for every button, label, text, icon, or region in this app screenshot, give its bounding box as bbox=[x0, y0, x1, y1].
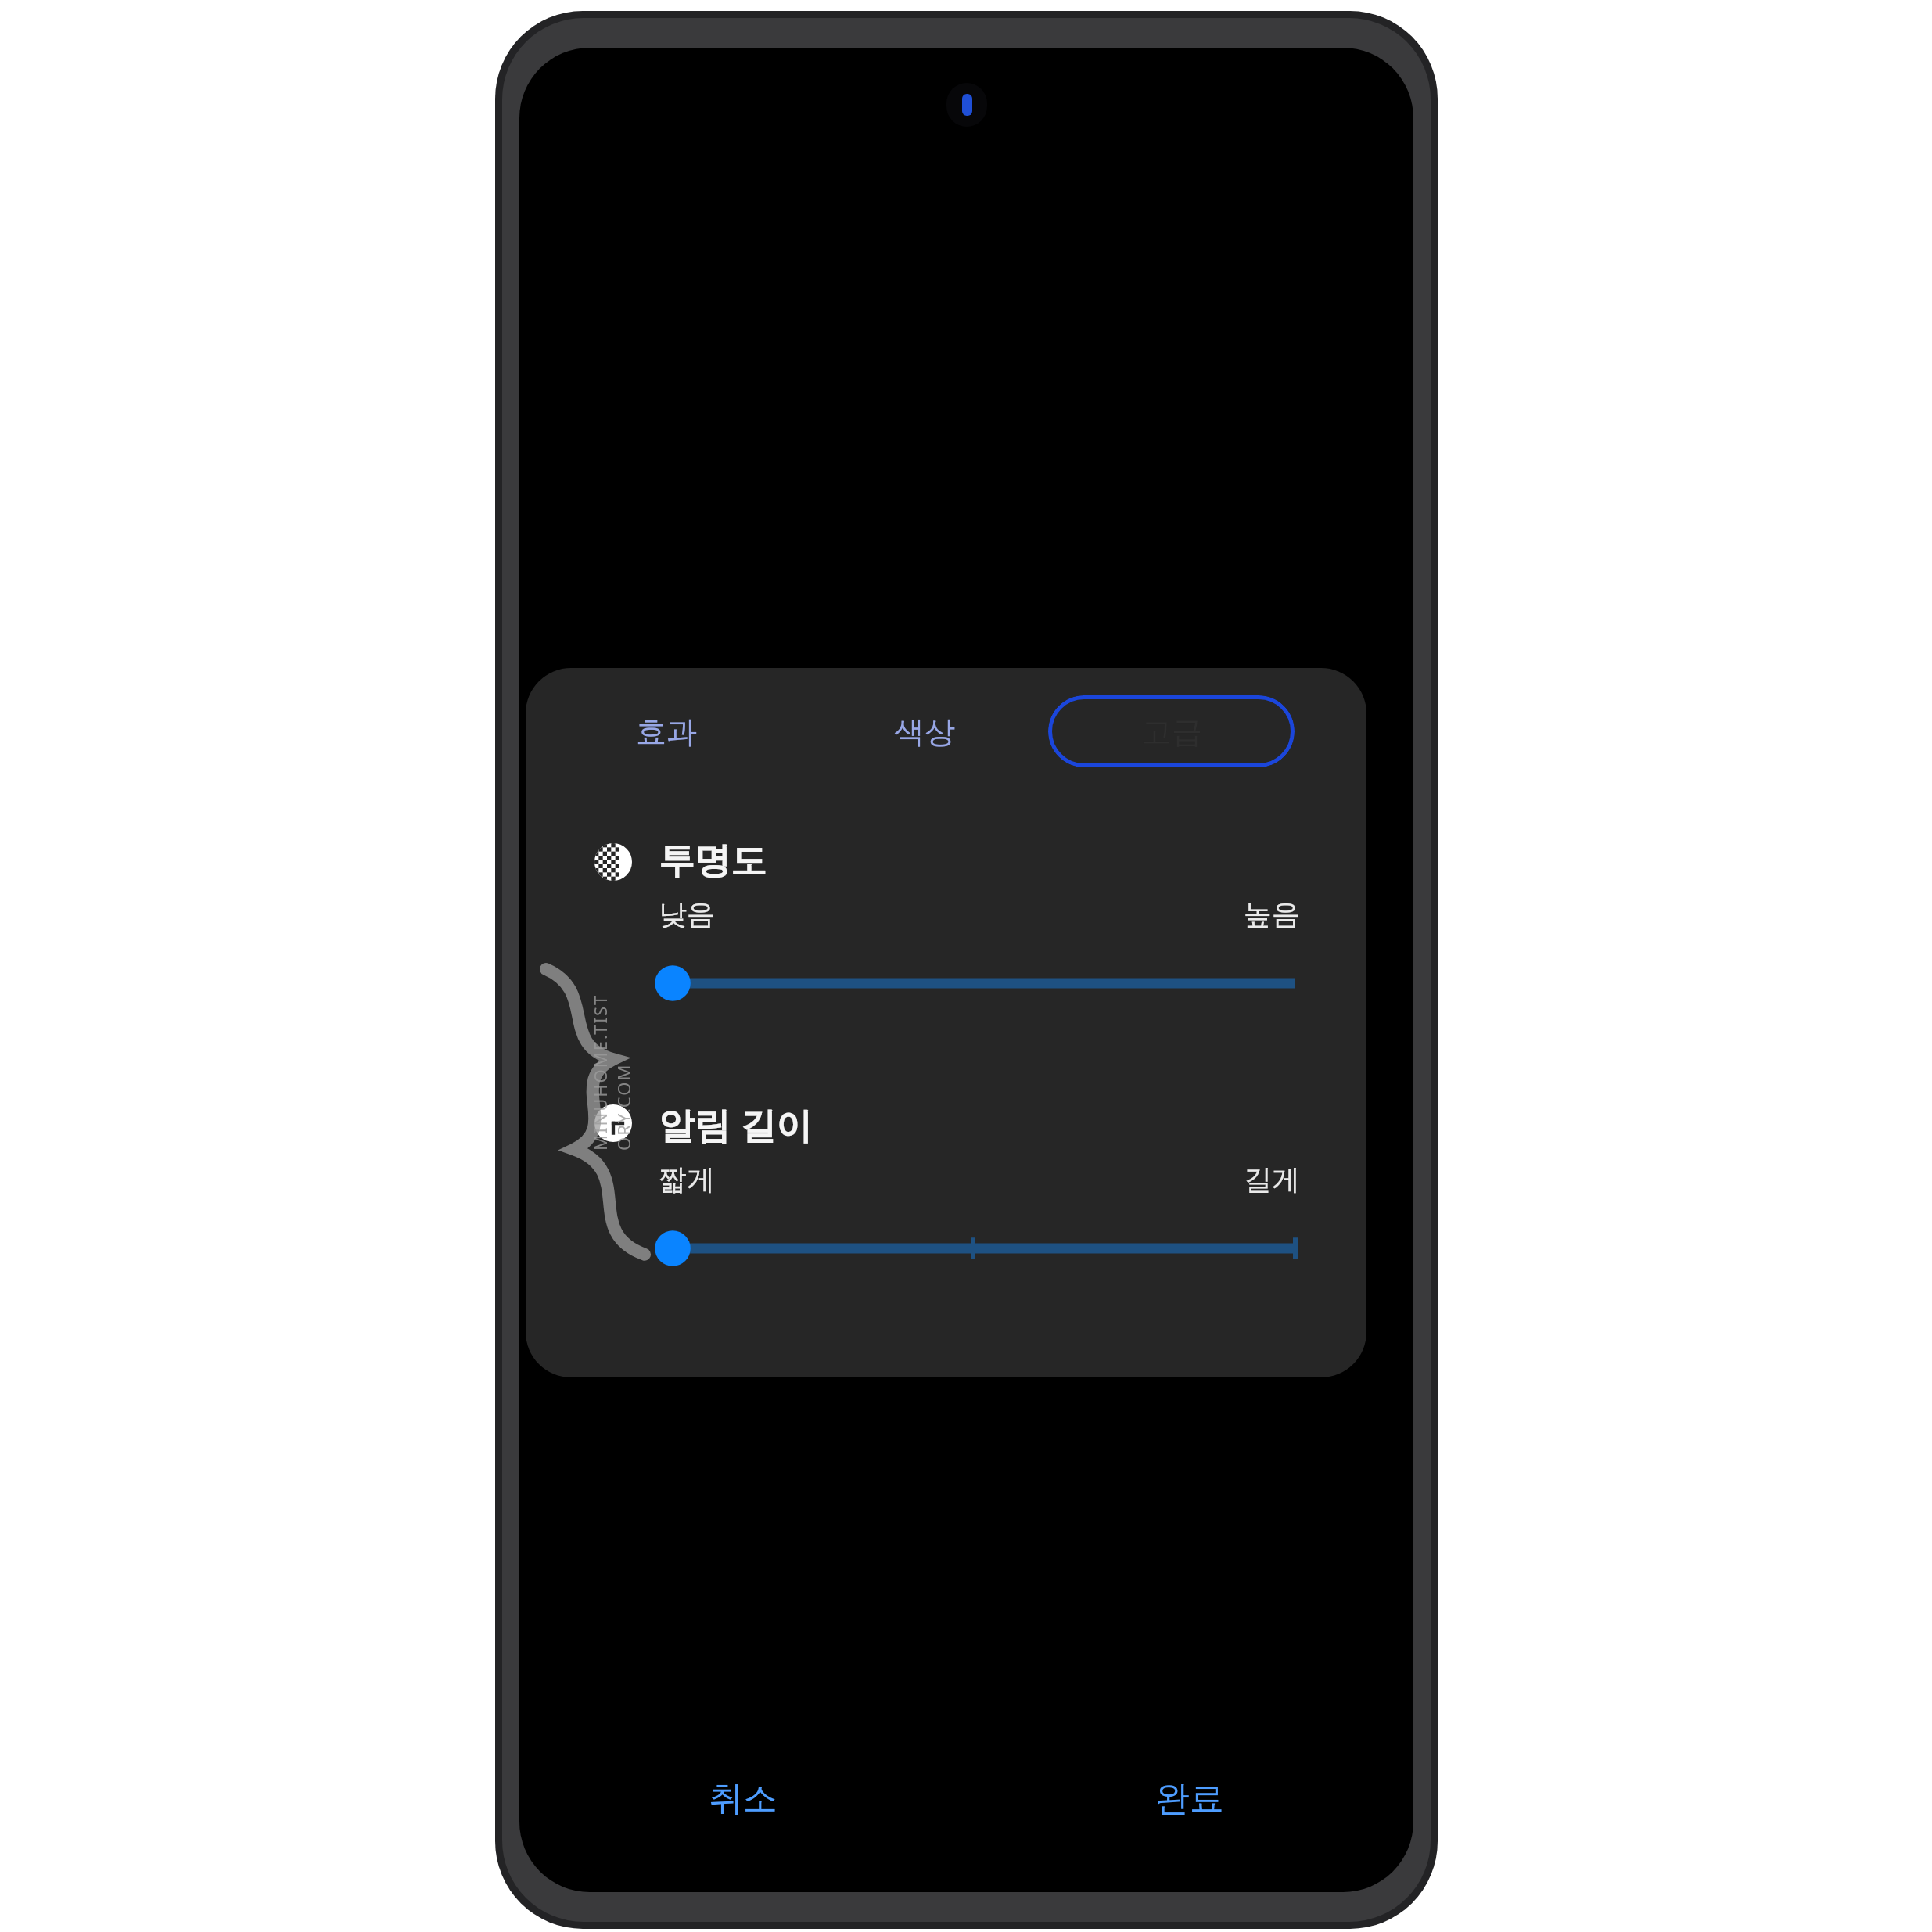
other: Duration bbox=[594, 1104, 632, 1142]
button[interactable]: 효과 bbox=[526, 685, 807, 777]
staticText: 효과 bbox=[636, 713, 697, 751]
staticText: 높음 bbox=[1244, 896, 1300, 932]
staticText: 취소 bbox=[709, 1777, 777, 1820]
button[interactable]: Slider bbox=[659, 1225, 1300, 1272]
staticText: 길게 bbox=[1244, 1162, 1300, 1197]
staticText: 색상 bbox=[894, 713, 955, 751]
staticText: MINUHOME.TISTORY.COM bbox=[588, 994, 635, 1151]
button[interactable]: 고급 bbox=[1048, 695, 1295, 767]
staticText: 낮음 bbox=[659, 896, 715, 932]
staticText: 짧게 bbox=[659, 1162, 715, 1197]
button[interactable]: 색상 bbox=[807, 685, 1042, 777]
staticText: 완료 bbox=[1155, 1777, 1224, 1820]
staticText: 투명도 bbox=[659, 839, 767, 884]
button[interactable]: 완료 bbox=[966, 1750, 1413, 1847]
button[interactable]: Slider bbox=[659, 960, 1300, 1007]
staticText: 알림 길이 bbox=[659, 1100, 812, 1149]
other: Transparency bbox=[594, 843, 632, 881]
button[interactable]: 취소 bbox=[519, 1750, 966, 1847]
